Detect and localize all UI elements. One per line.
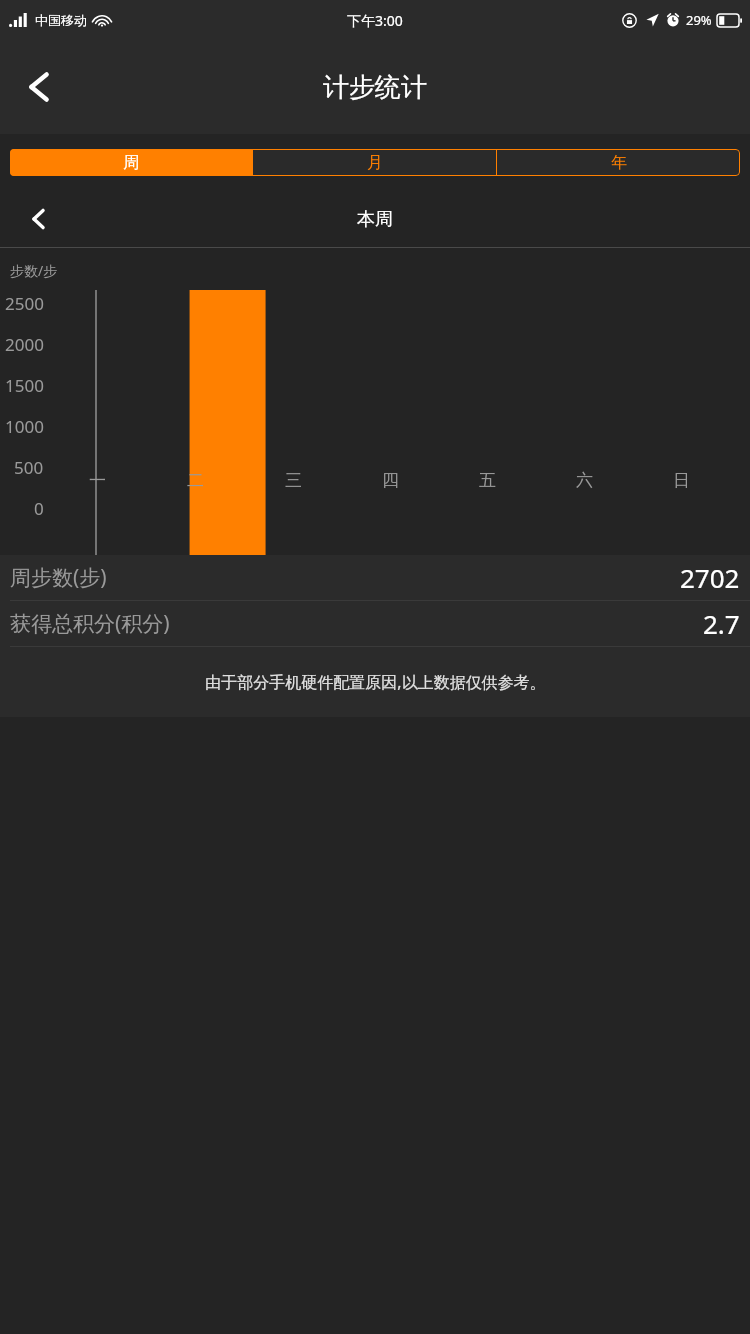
staticText: 六 xyxy=(576,470,593,491)
staticText: 五 xyxy=(479,470,496,491)
staticText: 1500 xyxy=(5,374,44,396)
staticText: 月 xyxy=(367,153,383,173)
button[interactable]: 周 xyxy=(10,149,252,176)
button[interactable]: 年 xyxy=(497,149,740,176)
button[interactable]: 上一周 xyxy=(0,191,76,247)
staticText: 2000 xyxy=(5,333,44,355)
staticText: 29% xyxy=(686,11,712,29)
button[interactable]: 获得总积分(积分) xyxy=(0,601,750,646)
staticText: 2.7 xyxy=(703,606,740,641)
staticText: 获得总积分(积分) xyxy=(10,609,170,638)
staticText: 日 xyxy=(673,470,690,491)
staticText: 二 xyxy=(187,470,204,491)
staticText: 计步统计 xyxy=(323,71,427,104)
staticText: 步数/步 xyxy=(10,261,58,280)
staticText: 中国移动 xyxy=(35,12,87,28)
staticText: 1000 xyxy=(5,415,44,437)
staticText: 一 xyxy=(89,470,106,491)
staticText: 年 xyxy=(611,153,627,173)
staticText: 下午3:00 xyxy=(347,11,403,30)
staticText: 四 xyxy=(382,470,399,491)
staticText: 本周 xyxy=(357,208,393,231)
staticText: 2702 xyxy=(680,560,740,595)
staticText: 500 xyxy=(14,456,44,478)
button[interactable]: 周步数(步) xyxy=(0,555,750,600)
staticText: 周步数(步) xyxy=(10,563,107,592)
staticText: 2500 xyxy=(5,292,44,314)
button[interactable]: 返回 xyxy=(0,40,78,134)
staticText: 三 xyxy=(285,470,302,491)
staticText: 0 xyxy=(34,497,44,519)
staticText: 周 xyxy=(123,153,139,173)
button[interactable]: 月 xyxy=(253,149,496,176)
staticText: 由于部分手机硬件配置原因,以上数据仅供参考。 xyxy=(205,671,546,693)
